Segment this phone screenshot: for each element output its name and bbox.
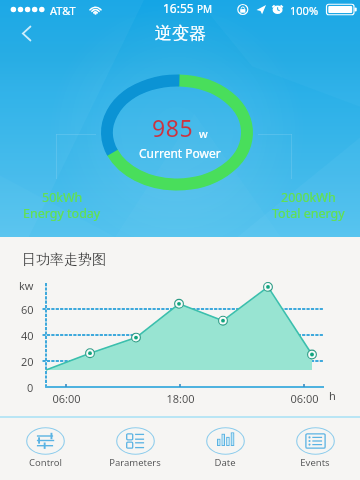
staticText: PM bbox=[197, 2, 213, 16]
button[interactable]: Back bbox=[8, 15, 44, 51]
staticText: 20 bbox=[21, 354, 34, 369]
staticText: 06:00 bbox=[52, 391, 81, 406]
staticText: Parameters bbox=[109, 456, 161, 469]
staticText: w bbox=[199, 126, 208, 141]
staticText: 40 bbox=[21, 328, 34, 343]
staticText: 2000kWh bbox=[281, 189, 336, 206]
button[interactable]: Parameters bbox=[90, 418, 180, 480]
staticText: Current Power bbox=[139, 145, 221, 161]
staticText: 100% bbox=[290, 3, 319, 18]
staticText: AT&T bbox=[50, 3, 76, 18]
staticText: Date bbox=[214, 456, 236, 469]
staticText: Energy today bbox=[23, 205, 101, 222]
staticText: 50kWh bbox=[42, 189, 83, 206]
staticText: h bbox=[329, 388, 336, 403]
staticText: 06:00 bbox=[290, 391, 319, 406]
staticText: 逆变器 bbox=[155, 23, 206, 44]
staticText: 985 bbox=[152, 112, 194, 143]
staticText: 0 bbox=[27, 380, 34, 395]
button[interactable]: Date bbox=[180, 418, 270, 480]
staticText: Events bbox=[300, 456, 330, 469]
staticText: Total energy bbox=[272, 205, 345, 222]
staticText: 60 bbox=[21, 302, 34, 317]
button[interactable]: Control bbox=[0, 418, 90, 480]
staticText: 18:00 bbox=[166, 391, 195, 406]
staticText: 16:55 bbox=[163, 0, 194, 16]
staticText: kw bbox=[19, 278, 34, 293]
staticText: Control bbox=[29, 456, 62, 469]
staticText: 日功率走势图 bbox=[22, 251, 106, 269]
button[interactable]: Events bbox=[270, 418, 360, 480]
